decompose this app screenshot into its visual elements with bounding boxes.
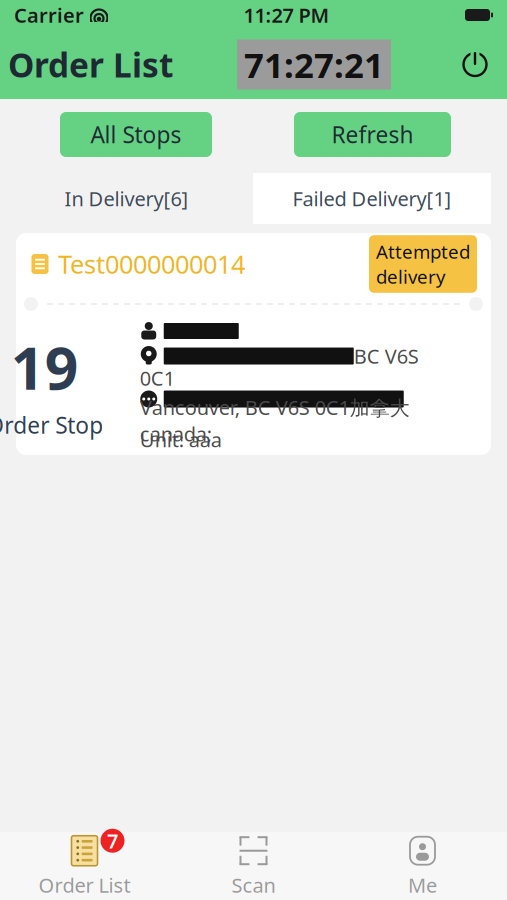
staticText: All Stops — [90, 119, 181, 149]
button[interactable]: 7 — [0, 834, 169, 898]
staticText: 19 — [11, 328, 79, 406]
button[interactable]: Failed Delivery[1] — [253, 173, 491, 224]
staticText: 71:27:21 — [244, 41, 384, 87]
staticText: 11:27 PM — [243, 2, 329, 28]
staticText: 7 — [107, 827, 118, 854]
staticText: Carrier — [14, 2, 84, 28]
staticText: Failed Delivery[1] — [292, 185, 451, 212]
button[interactable]: Me — [338, 834, 507, 898]
staticText: Order List — [8, 42, 173, 87]
staticText: Order Stop — [0, 410, 103, 440]
staticText: Scan — [231, 872, 275, 898]
staticText: Unit: aaa — [140, 426, 222, 453]
button[interactable]: Scan — [169, 834, 338, 898]
staticText: Refresh — [331, 119, 413, 149]
staticText: In Delivery[6] — [64, 185, 188, 212]
staticText: Order List — [38, 872, 130, 898]
staticText: BC V6S — [354, 343, 419, 369]
staticText: 0C1 — [140, 365, 175, 391]
staticText: Test0000000014 — [58, 247, 245, 281]
button[interactable]: Power off — [455, 44, 495, 84]
button[interactable]: In Delivery[6] — [0, 173, 253, 224]
button[interactable]: Refresh — [294, 112, 451, 157]
button[interactable]: All Stops — [60, 112, 212, 157]
staticText: Attempted delivery — [376, 239, 470, 289]
staticText: Me — [408, 872, 437, 898]
staticText: Vancouver, BC V6S 0C1加拿大 canada; — [140, 394, 410, 447]
button[interactable]: Test0000000014 — [16, 233, 491, 455]
